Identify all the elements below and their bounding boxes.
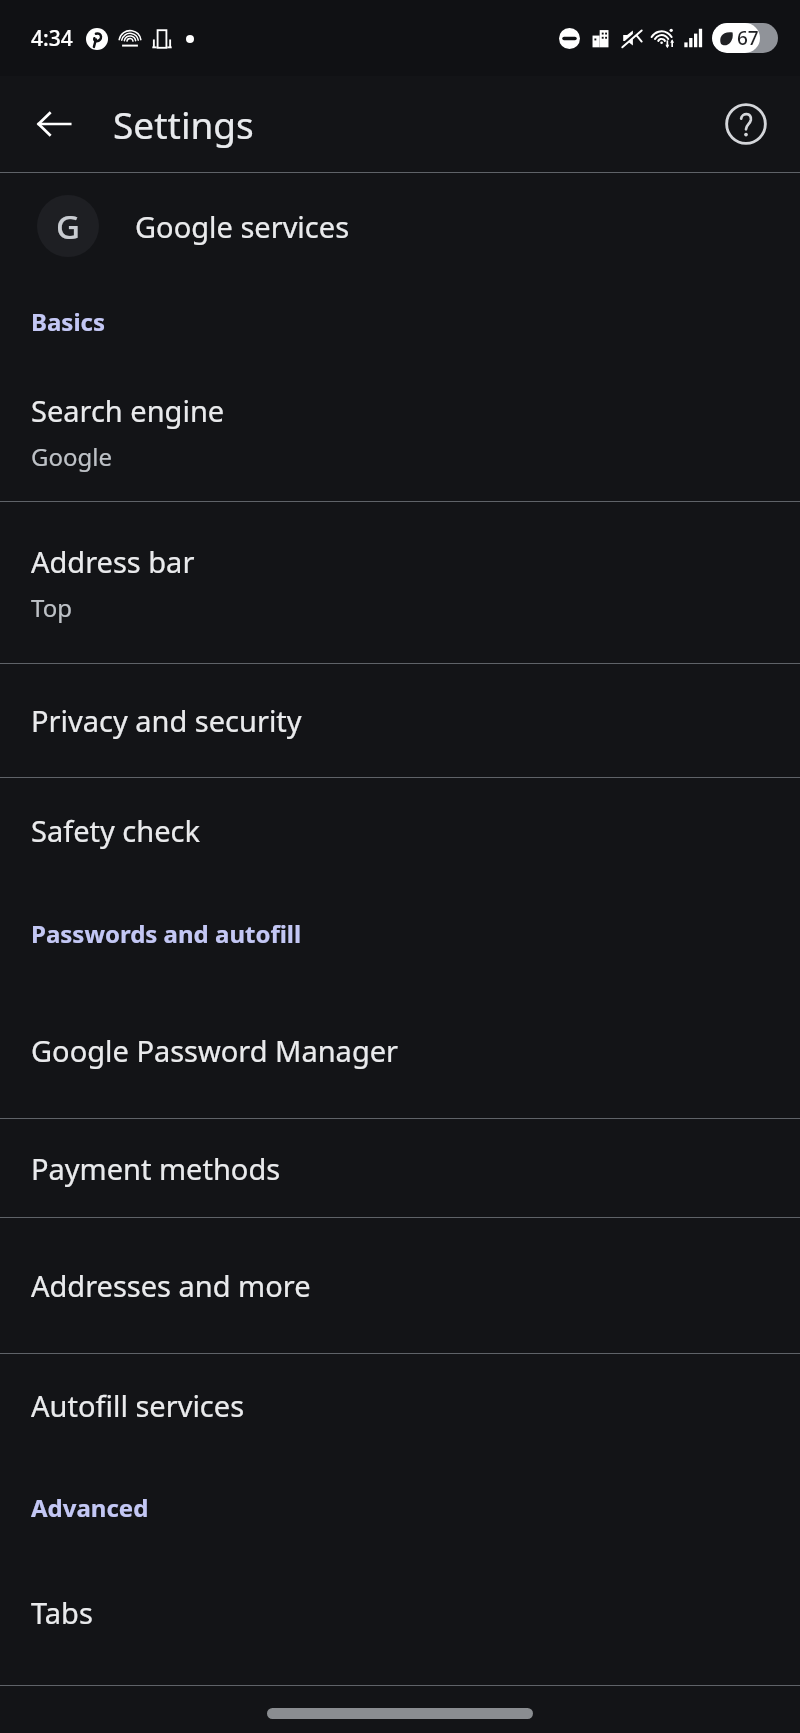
staticText: G: [56, 204, 80, 249]
button[interactable]: Addresses and more: [0, 1218, 800, 1353]
staticText: Privacy and security: [31, 701, 302, 740]
button[interactable]: Autofill services: [0, 1354, 800, 1457]
button[interactable]: G: [0, 173, 800, 279]
button[interactable]: Google Password Manager: [0, 983, 800, 1118]
staticText: 4:34: [31, 24, 73, 53]
button[interactable]: Tabs: [0, 1557, 800, 1667]
staticText: Addresses and more: [31, 1266, 311, 1305]
staticText: Search engine: [31, 391, 225, 430]
staticText: Safety check: [31, 811, 200, 850]
staticText: Google services: [135, 207, 350, 246]
staticText: 67: [737, 25, 759, 51]
staticText: Top: [31, 591, 72, 624]
staticText: Basics: [31, 305, 105, 338]
staticText: Google Password Manager: [31, 1031, 399, 1070]
staticText: Settings: [113, 99, 254, 149]
button[interactable]: Help: [712, 90, 780, 158]
button[interactable]: Address bar: [0, 502, 800, 663]
button[interactable]: Search engine: [0, 363, 800, 501]
button[interactable]: Privacy and security: [0, 664, 800, 777]
button[interactable]: Back: [20, 90, 88, 158]
staticText: Payment methods: [31, 1149, 281, 1188]
staticText: Tabs: [31, 1593, 93, 1632]
staticText: Passwords and autofill: [31, 917, 302, 950]
button[interactable]: Safety check: [0, 778, 800, 883]
button[interactable]: Payment methods: [0, 1119, 800, 1217]
staticText: Autofill services: [31, 1386, 245, 1425]
staticText: Advanced: [31, 1491, 149, 1524]
staticText: Google: [31, 440, 112, 473]
staticText: Address bar: [31, 542, 195, 581]
